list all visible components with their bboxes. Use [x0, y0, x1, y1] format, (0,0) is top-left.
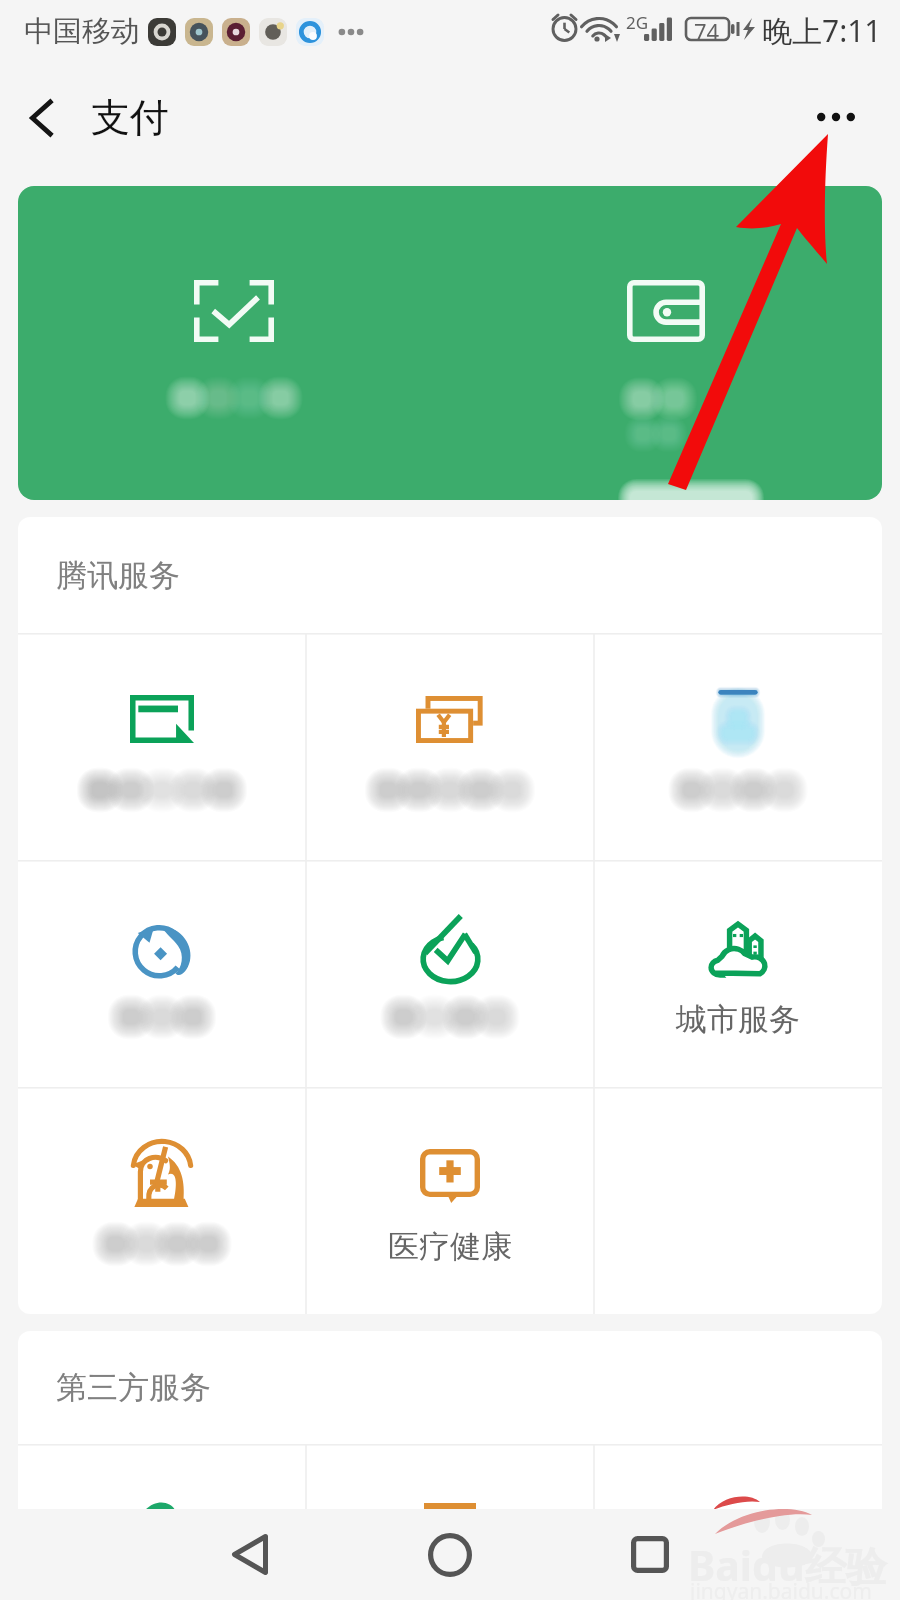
- staticText: jingyan.baidu.com: [690, 1577, 872, 1600]
- button[interactable]: [18, 860, 306, 1087]
- staticText: 74: [694, 16, 720, 46]
- staticText: Baidu经验: [688, 1537, 887, 1593]
- button[interactable]: [306, 860, 594, 1087]
- button[interactable]: 城市服务: [594, 860, 882, 1087]
- staticText: 晚上7:11: [762, 10, 882, 51]
- staticText: 2G: [626, 11, 649, 34]
- staticText: 医疗健康: [388, 1227, 512, 1266]
- button[interactable]: [18, 186, 450, 500]
- button[interactable]: Back: [0, 79, 185, 156]
- button[interactable]: Home: [405, 1509, 495, 1600]
- button[interactable]: [594, 633, 882, 860]
- button[interactable]: Recent apps: [605, 1509, 695, 1600]
- staticText: 中国移动: [24, 13, 140, 50]
- button[interactable]: [18, 1087, 306, 1314]
- button[interactable]: [306, 1444, 594, 1524]
- staticText: 支付: [91, 93, 169, 142]
- staticText: 城市服务: [676, 1000, 800, 1039]
- button[interactable]: More options: [787, 87, 900, 147]
- button[interactable]: [594, 1444, 882, 1524]
- button[interactable]: [18, 633, 306, 860]
- button[interactable]: [450, 186, 882, 500]
- other: Back: [30, 98, 54, 138]
- button[interactable]: Back: [205, 1509, 295, 1600]
- button[interactable]: [18, 1444, 306, 1524]
- staticText: 腾讯服务: [56, 556, 180, 595]
- button[interactable]: [306, 633, 594, 860]
- staticText: 第三方服务: [56, 1368, 211, 1407]
- button[interactable]: 医疗健康: [306, 1087, 594, 1314]
